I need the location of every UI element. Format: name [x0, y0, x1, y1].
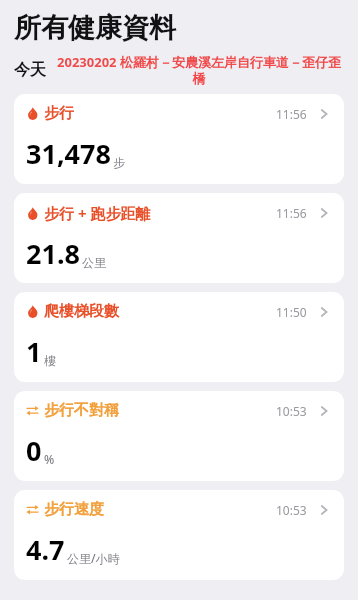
- staticText: 步: [113, 155, 125, 170]
- staticText: 31,478: [26, 135, 111, 172]
- staticText: 步行: [44, 104, 74, 123]
- staticText: %: [44, 451, 55, 467]
- button[interactable]: 顯示更多: [316, 403, 332, 419]
- button[interactable]: 步行速度: [14, 490, 344, 580]
- staticText: 今天: [14, 60, 46, 80]
- button[interactable]: 爬樓梯段數: [14, 292, 344, 382]
- staticText: 11:50: [276, 304, 307, 320]
- staticText: 樓: [44, 353, 56, 368]
- button[interactable]: 步行不對稱: [14, 391, 344, 481]
- staticText: 0: [26, 432, 42, 469]
- staticText: 所有健康資料: [14, 11, 176, 45]
- staticText: 4.7: [26, 531, 65, 568]
- staticText: 20230202 松羅村－安農溪左岸自行車道－歪仔歪橋: [54, 53, 344, 87]
- staticText: 11:56: [276, 106, 307, 122]
- staticText: 21.8: [26, 235, 80, 272]
- button[interactable]: 顯示更多: [316, 502, 332, 518]
- staticText: 10:53: [276, 502, 307, 518]
- staticText: 步行速度: [44, 500, 104, 519]
- staticText: 公里: [82, 255, 106, 270]
- staticText: 爬樓梯段數: [44, 302, 119, 321]
- button[interactable]: 顯示更多: [316, 205, 332, 221]
- staticText: 11:56: [276, 205, 307, 221]
- button[interactable]: 步行 + 跑步距離: [14, 193, 344, 283]
- staticText: 步行不對稱: [44, 401, 119, 420]
- staticText: 公里/小時: [67, 550, 120, 566]
- staticText: 1: [26, 333, 42, 370]
- button[interactable]: 顯示更多: [316, 106, 332, 122]
- button[interactable]: 顯示更多: [316, 304, 332, 320]
- button[interactable]: 步行: [14, 94, 344, 184]
- staticText: 步行 + 跑步距離: [44, 203, 151, 223]
- staticText: 10:53: [276, 403, 307, 419]
